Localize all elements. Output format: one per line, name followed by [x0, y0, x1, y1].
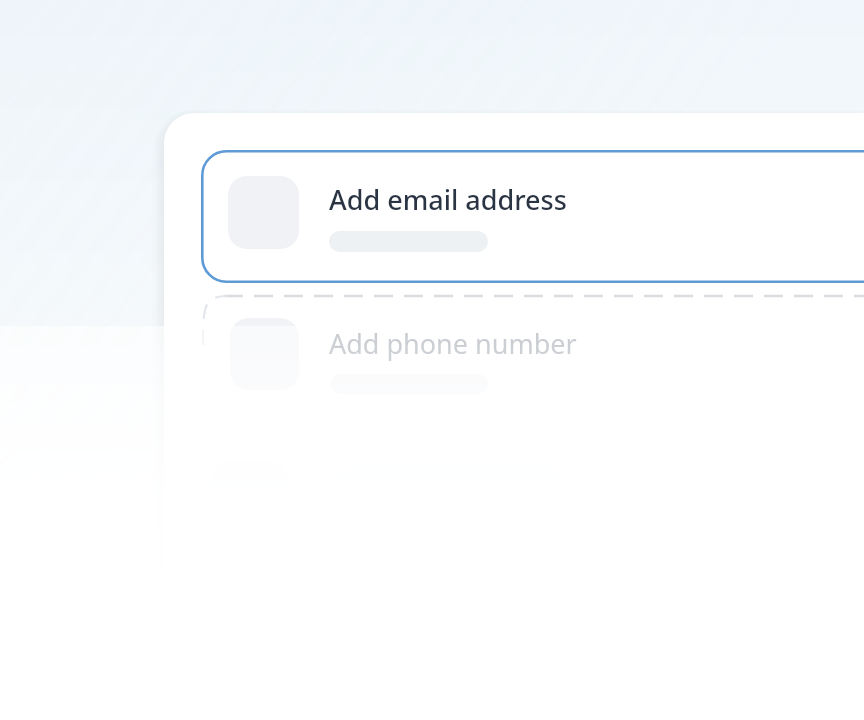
button[interactable]: Add email address, focused input row: [0, 0, 864, 720]
